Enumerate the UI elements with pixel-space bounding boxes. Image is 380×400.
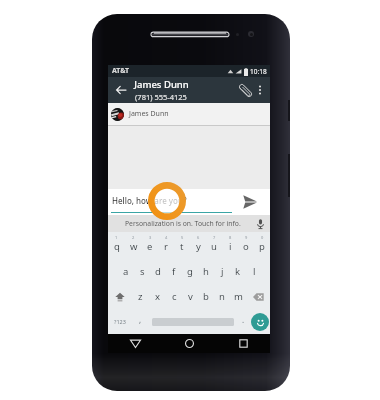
staticText: 7 <box>213 235 216 240</box>
staticText: d <box>155 265 161 278</box>
staticText: (781) 555-4125 <box>135 92 187 102</box>
staticText: AT&T <box>112 66 130 76</box>
button[interactable]: Personalization is on. Touch for info. <box>108 215 270 232</box>
staticText: n <box>219 290 225 303</box>
button[interactable]: 4 <box>158 232 174 259</box>
button[interactable]: , <box>132 309 149 334</box>
staticText: m <box>234 290 243 303</box>
button[interactable]: 0 <box>254 232 270 259</box>
button[interactable]: More options <box>253 83 267 97</box>
staticText: h <box>203 265 209 278</box>
button[interactable]: z <box>132 284 149 309</box>
button[interactable]: 2 <box>125 232 142 259</box>
button[interactable]: Back <box>108 334 162 353</box>
button[interactable]: Home <box>162 334 216 353</box>
button[interactable]: j <box>214 259 230 284</box>
button[interactable]: James Dunn <box>108 103 270 125</box>
button[interactable]: Emoji <box>250 309 270 334</box>
staticText: 1 <box>115 235 118 240</box>
button[interactable]: v <box>182 284 198 309</box>
staticText: q <box>114 240 120 253</box>
staticText: 2 <box>132 235 135 240</box>
staticText: 3 <box>149 235 152 240</box>
button[interactable]: b <box>198 284 214 309</box>
button[interactable]: Voice input <box>254 217 267 230</box>
button[interactable]: Recent apps <box>216 334 270 353</box>
button[interactable]: d <box>150 259 166 284</box>
staticText: James Dunn <box>134 78 189 91</box>
button[interactable]: f <box>166 259 182 284</box>
button[interactable]: Attach file <box>237 82 253 98</box>
staticText: p <box>259 240 265 253</box>
button[interactable]: Send <box>238 190 262 214</box>
staticText: Personalization is on. Touch for info. <box>125 219 241 228</box>
button[interactable]: 5 <box>174 232 190 259</box>
staticText: 0 <box>261 235 264 240</box>
staticText: g <box>187 265 193 278</box>
staticText: u <box>211 240 217 253</box>
staticText: e <box>147 240 153 253</box>
button[interactable]: h <box>198 259 214 284</box>
button[interactable]: 1 <box>108 232 125 259</box>
staticText: r <box>164 240 168 253</box>
staticText: 4 <box>165 235 168 240</box>
button[interactable] <box>149 309 237 334</box>
button[interactable]: 7 <box>206 232 222 259</box>
staticText: 6 <box>197 235 200 240</box>
staticText: f <box>172 265 176 278</box>
staticText: c <box>172 290 177 303</box>
staticText: i <box>229 240 232 253</box>
staticText: b <box>203 290 209 303</box>
staticText: 8 <box>229 235 232 240</box>
button[interactable]: Shift <box>108 284 132 309</box>
staticText: l <box>253 265 256 278</box>
button[interactable]: 3 <box>142 232 158 259</box>
staticText: k <box>235 265 241 278</box>
staticText: . <box>242 314 245 325</box>
button[interactable]: g <box>182 259 198 284</box>
button[interactable]: m <box>230 284 246 309</box>
button[interactable]: l <box>246 259 262 284</box>
button[interactable]: x <box>149 284 166 309</box>
staticText: w <box>130 240 138 253</box>
staticText: v <box>188 290 193 303</box>
staticText: y <box>196 240 201 253</box>
staticText: t <box>180 240 184 253</box>
button[interactable]: k <box>230 259 246 284</box>
button[interactable]: s <box>134 259 150 284</box>
staticText: o <box>243 240 249 253</box>
staticText: 5 <box>181 235 184 240</box>
button[interactable]: n <box>214 284 230 309</box>
staticText: j <box>221 265 224 278</box>
button[interactable]: Hello, how are you? <box>111 194 232 213</box>
staticText: Hello, how are you? <box>112 195 187 206</box>
staticText: , <box>139 314 142 325</box>
button[interactable]: a <box>117 259 134 284</box>
staticText: 10:18 <box>250 67 267 76</box>
button[interactable]: 6 <box>190 232 206 259</box>
button[interactable]: 9 <box>238 232 254 259</box>
button[interactable]: 8 <box>222 232 238 259</box>
staticText: z <box>138 290 143 303</box>
button[interactable]: c <box>166 284 182 309</box>
button[interactable]: Backspace <box>246 284 270 309</box>
staticText: 9 <box>245 235 248 240</box>
button[interactable]: . <box>237 309 250 334</box>
button[interactable]: Back <box>113 82 129 98</box>
staticText: a <box>123 265 129 278</box>
staticText: x <box>155 290 161 303</box>
staticText: James Dunn <box>129 109 169 119</box>
button[interactable]: ?123 <box>108 309 132 334</box>
staticText: s <box>140 265 145 278</box>
staticText: ?123 <box>114 318 126 325</box>
